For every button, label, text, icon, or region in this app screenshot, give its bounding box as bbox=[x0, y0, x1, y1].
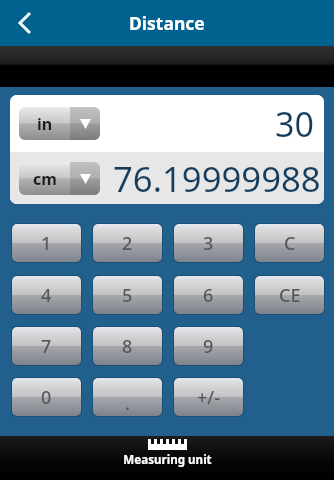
button[interactable]: CE bbox=[255, 276, 324, 314]
staticText: 2 bbox=[122, 231, 133, 256]
staticText: Measuring unit bbox=[123, 452, 212, 468]
button[interactable]: in bbox=[19, 107, 100, 140]
staticText: +/- bbox=[197, 385, 221, 410]
staticText: 8 bbox=[122, 334, 133, 359]
staticText: CE bbox=[279, 283, 301, 308]
button[interactable]: 1 bbox=[12, 224, 81, 262]
button[interactable]: +/- bbox=[174, 378, 243, 416]
staticText: C bbox=[284, 231, 296, 256]
staticText: 6 bbox=[203, 283, 214, 308]
staticText: Distance bbox=[129, 11, 205, 35]
button[interactable]: 3 bbox=[174, 224, 243, 262]
button[interactable]: 4 bbox=[12, 276, 81, 314]
button[interactable]: . bbox=[93, 378, 162, 416]
button[interactable]: 2 bbox=[93, 224, 162, 262]
button[interactable]: Back bbox=[0, 0, 48, 46]
staticText: 4 bbox=[41, 283, 52, 308]
staticText: 0 bbox=[41, 385, 52, 410]
staticText: in bbox=[37, 113, 53, 135]
staticText: 76.19999988 bbox=[113, 155, 321, 202]
button[interactable]: 7 bbox=[12, 327, 81, 365]
button[interactable]: C bbox=[255, 224, 324, 262]
staticText: 5 bbox=[122, 283, 133, 308]
staticText: . bbox=[125, 391, 130, 416]
staticText: 7 bbox=[41, 334, 52, 359]
button[interactable]: 6 bbox=[174, 276, 243, 314]
staticText: 1 bbox=[41, 231, 52, 256]
staticText: 9 bbox=[203, 334, 214, 359]
button[interactable]: 9 bbox=[174, 327, 243, 365]
button[interactable]: Measuring unit bbox=[0, 436, 334, 480]
staticText: 30 bbox=[275, 101, 314, 147]
staticText: cm bbox=[33, 168, 57, 190]
button[interactable]: cm bbox=[19, 162, 100, 195]
button[interactable]: 0 bbox=[12, 378, 81, 416]
button[interactable]: 5 bbox=[93, 276, 162, 314]
button[interactable]: 8 bbox=[93, 327, 162, 365]
staticText: 3 bbox=[203, 231, 214, 256]
